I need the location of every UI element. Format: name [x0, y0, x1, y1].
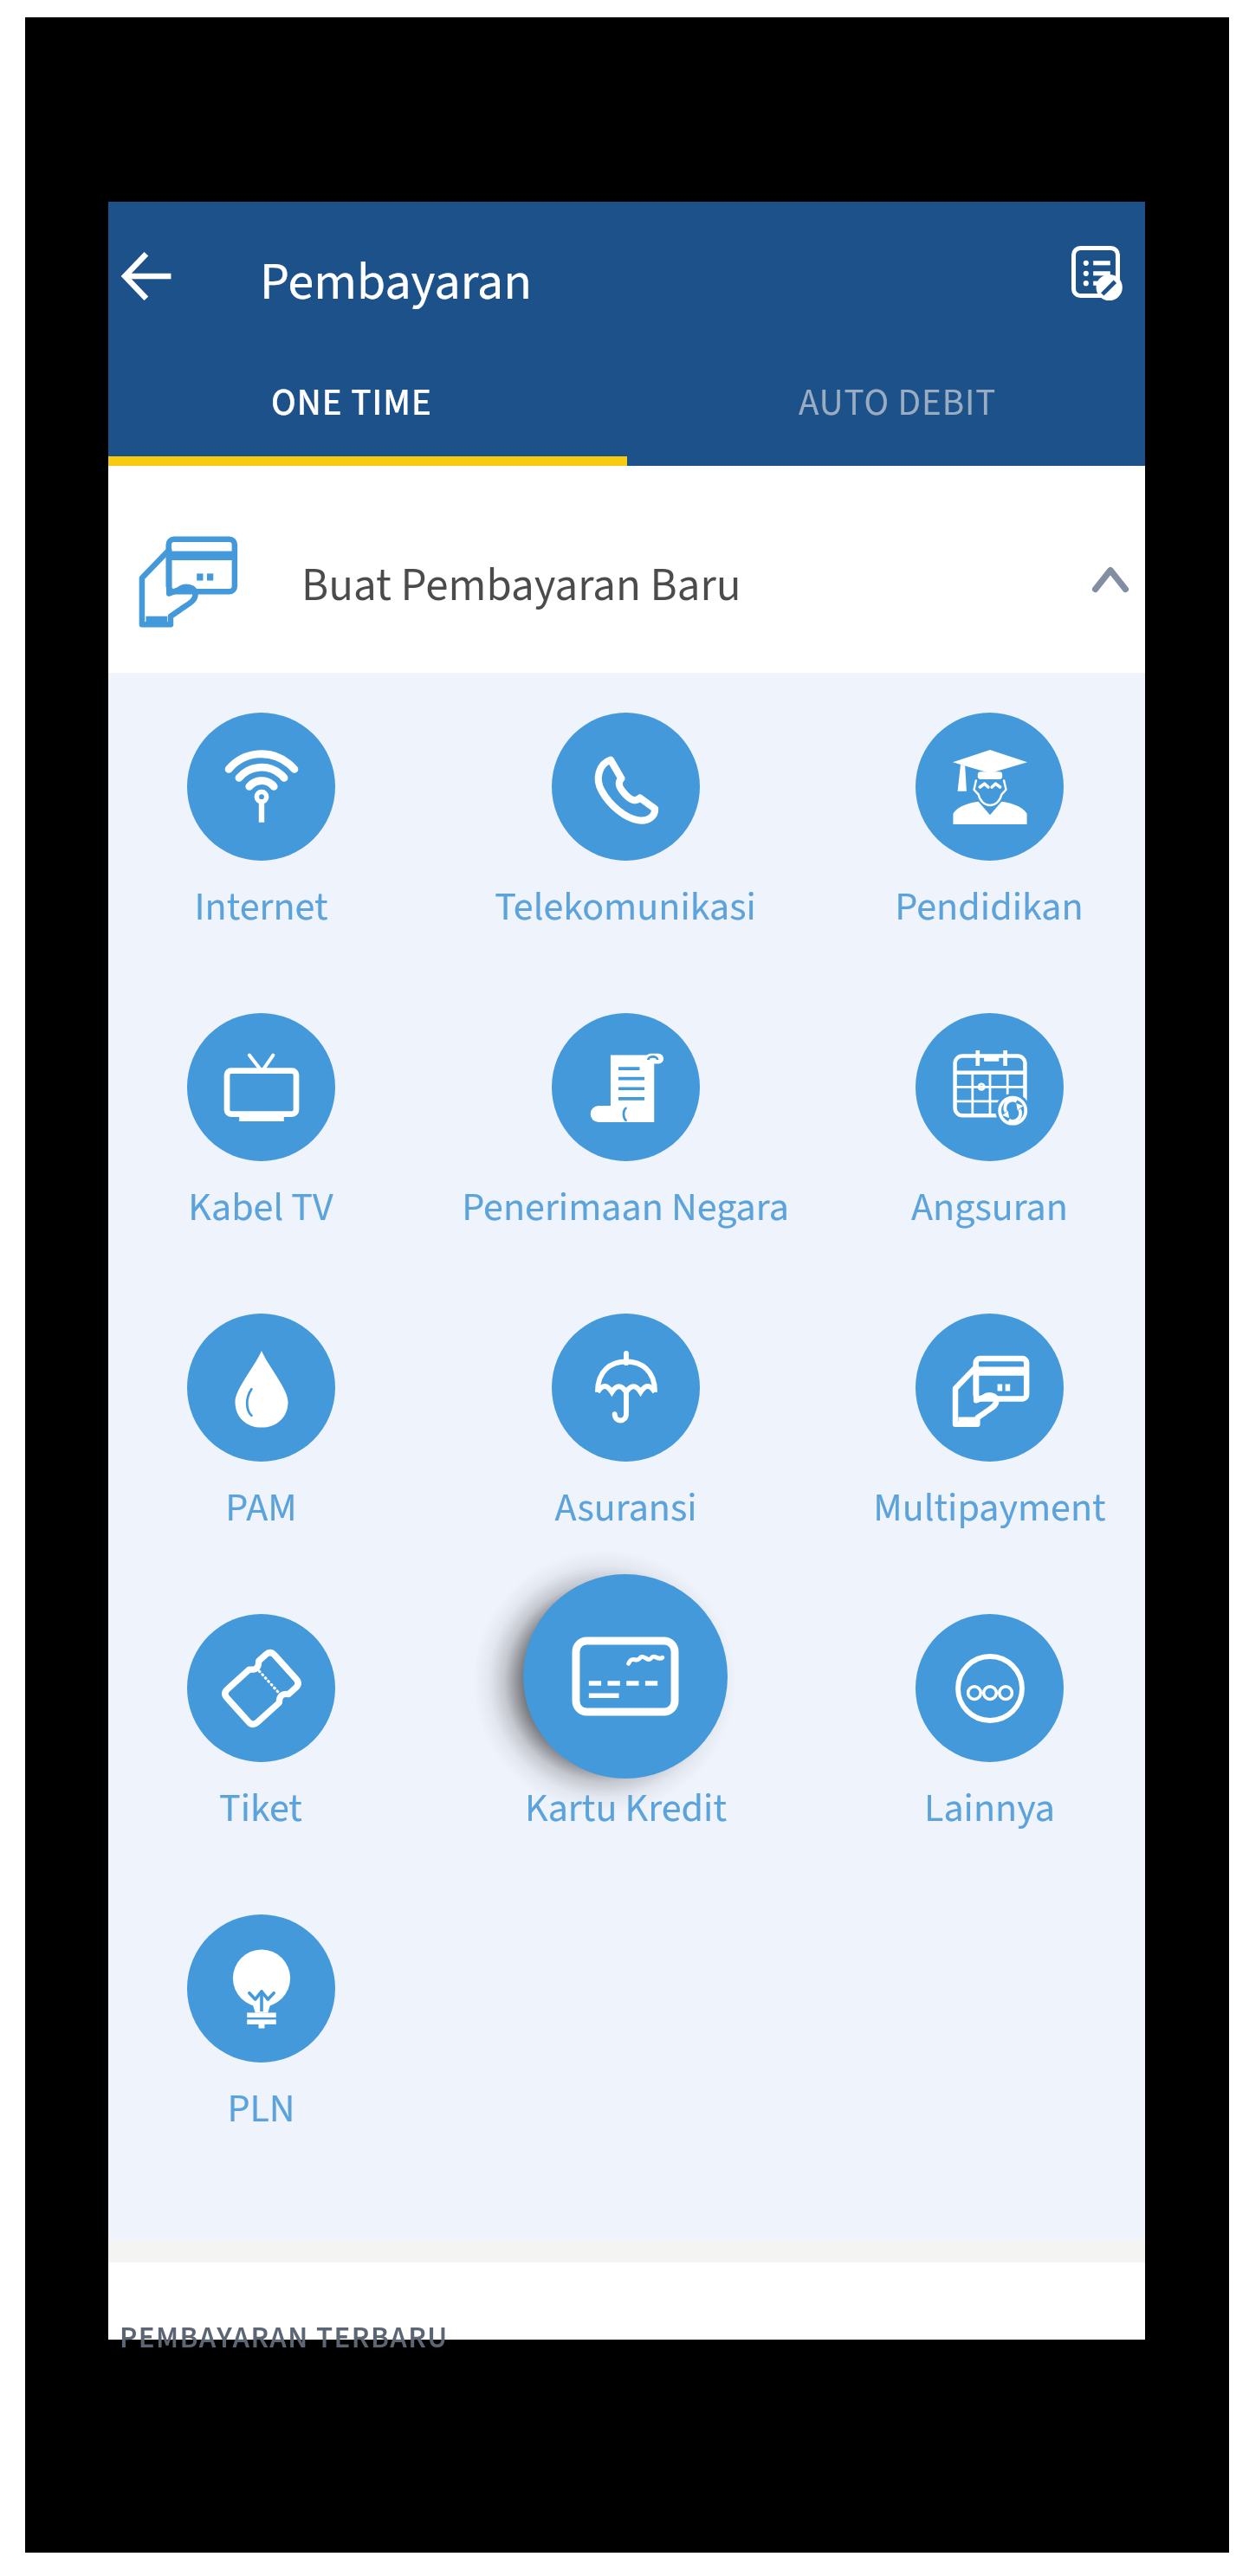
- staticText: Internet: [194, 879, 328, 936]
- staticText: Kabel TV: [188, 1179, 333, 1236]
- button[interactable]: Multipayment: [812, 1480, 1167, 1537]
- button[interactable]: Penerimaan Negara: [448, 1179, 803, 1236]
- staticText: Buat Pembayaran Baru: [301, 553, 741, 618]
- staticText: Kartu Kredit: [525, 1780, 727, 1837]
- staticText: Lainnya: [924, 1780, 1055, 1837]
- button[interactable]: Payment history: [1061, 229, 1129, 315]
- staticText: PEMBAYARAN TERBARU: [120, 2316, 449, 2360]
- button[interactable]: Asuransi: [448, 1480, 803, 1537]
- button[interactable]: Angsuran: [812, 1179, 1167, 1236]
- button[interactable]: Tiket: [83, 1780, 438, 1837]
- staticText: Tiket: [219, 1780, 302, 1837]
- button[interactable]: Kartu Kredit: [448, 1780, 803, 1837]
- button[interactable]: Buat Pembayaran Baru: [108, 466, 1145, 673]
- staticText: Multipayment: [873, 1480, 1106, 1537]
- staticText: Pembayaran: [260, 246, 533, 320]
- staticText: Penerimaan Negara: [462, 1179, 789, 1236]
- staticText: AUTO DEBIT: [799, 377, 997, 429]
- button[interactable]: Telekomunikasi: [448, 879, 803, 936]
- button[interactable]: Back: [108, 231, 186, 321]
- staticText: ONE TIME: [271, 377, 432, 429]
- staticText: Angsuran: [911, 1179, 1068, 1236]
- button[interactable]: PLN: [83, 2081, 438, 2138]
- button[interactable]: Kabel TV: [83, 1179, 438, 1236]
- button[interactable]: Lainnya: [812, 1780, 1167, 1837]
- staticText: PLN: [227, 2081, 295, 2138]
- button[interactable]: PAM: [83, 1480, 438, 1537]
- button[interactable]: ONE TIME: [108, 349, 627, 456]
- staticText: Pendidikan: [895, 879, 1084, 936]
- button[interactable]: AUTO DEBIT: [627, 349, 1145, 456]
- button[interactable]: Pendidikan: [812, 879, 1167, 936]
- staticText: Telekomunikasi: [495, 879, 756, 936]
- staticText: Asuransi: [554, 1480, 697, 1537]
- button[interactable]: Internet: [83, 879, 438, 936]
- staticText: PAM: [225, 1480, 297, 1537]
